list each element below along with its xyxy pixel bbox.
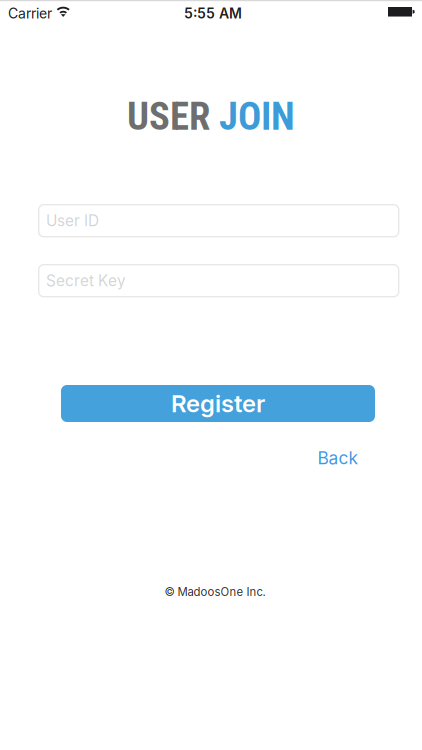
staticText: Carrier [8,5,52,22]
staticText: USER [127,94,210,139]
staticText: User ID [46,211,99,230]
button[interactable]: Back [310,448,366,468]
staticText: Register [171,389,265,418]
button[interactable]: Register [61,385,375,422]
button[interactable]: User ID [39,205,399,237]
staticText: JOIN [219,94,295,139]
button[interactable]: Secret Key [39,265,399,297]
staticText: Back [317,447,358,468]
staticText: Secret Key [46,271,126,290]
staticText: 5:55 AM [184,5,242,22]
staticText: © MadoosOne Inc. [164,585,265,599]
